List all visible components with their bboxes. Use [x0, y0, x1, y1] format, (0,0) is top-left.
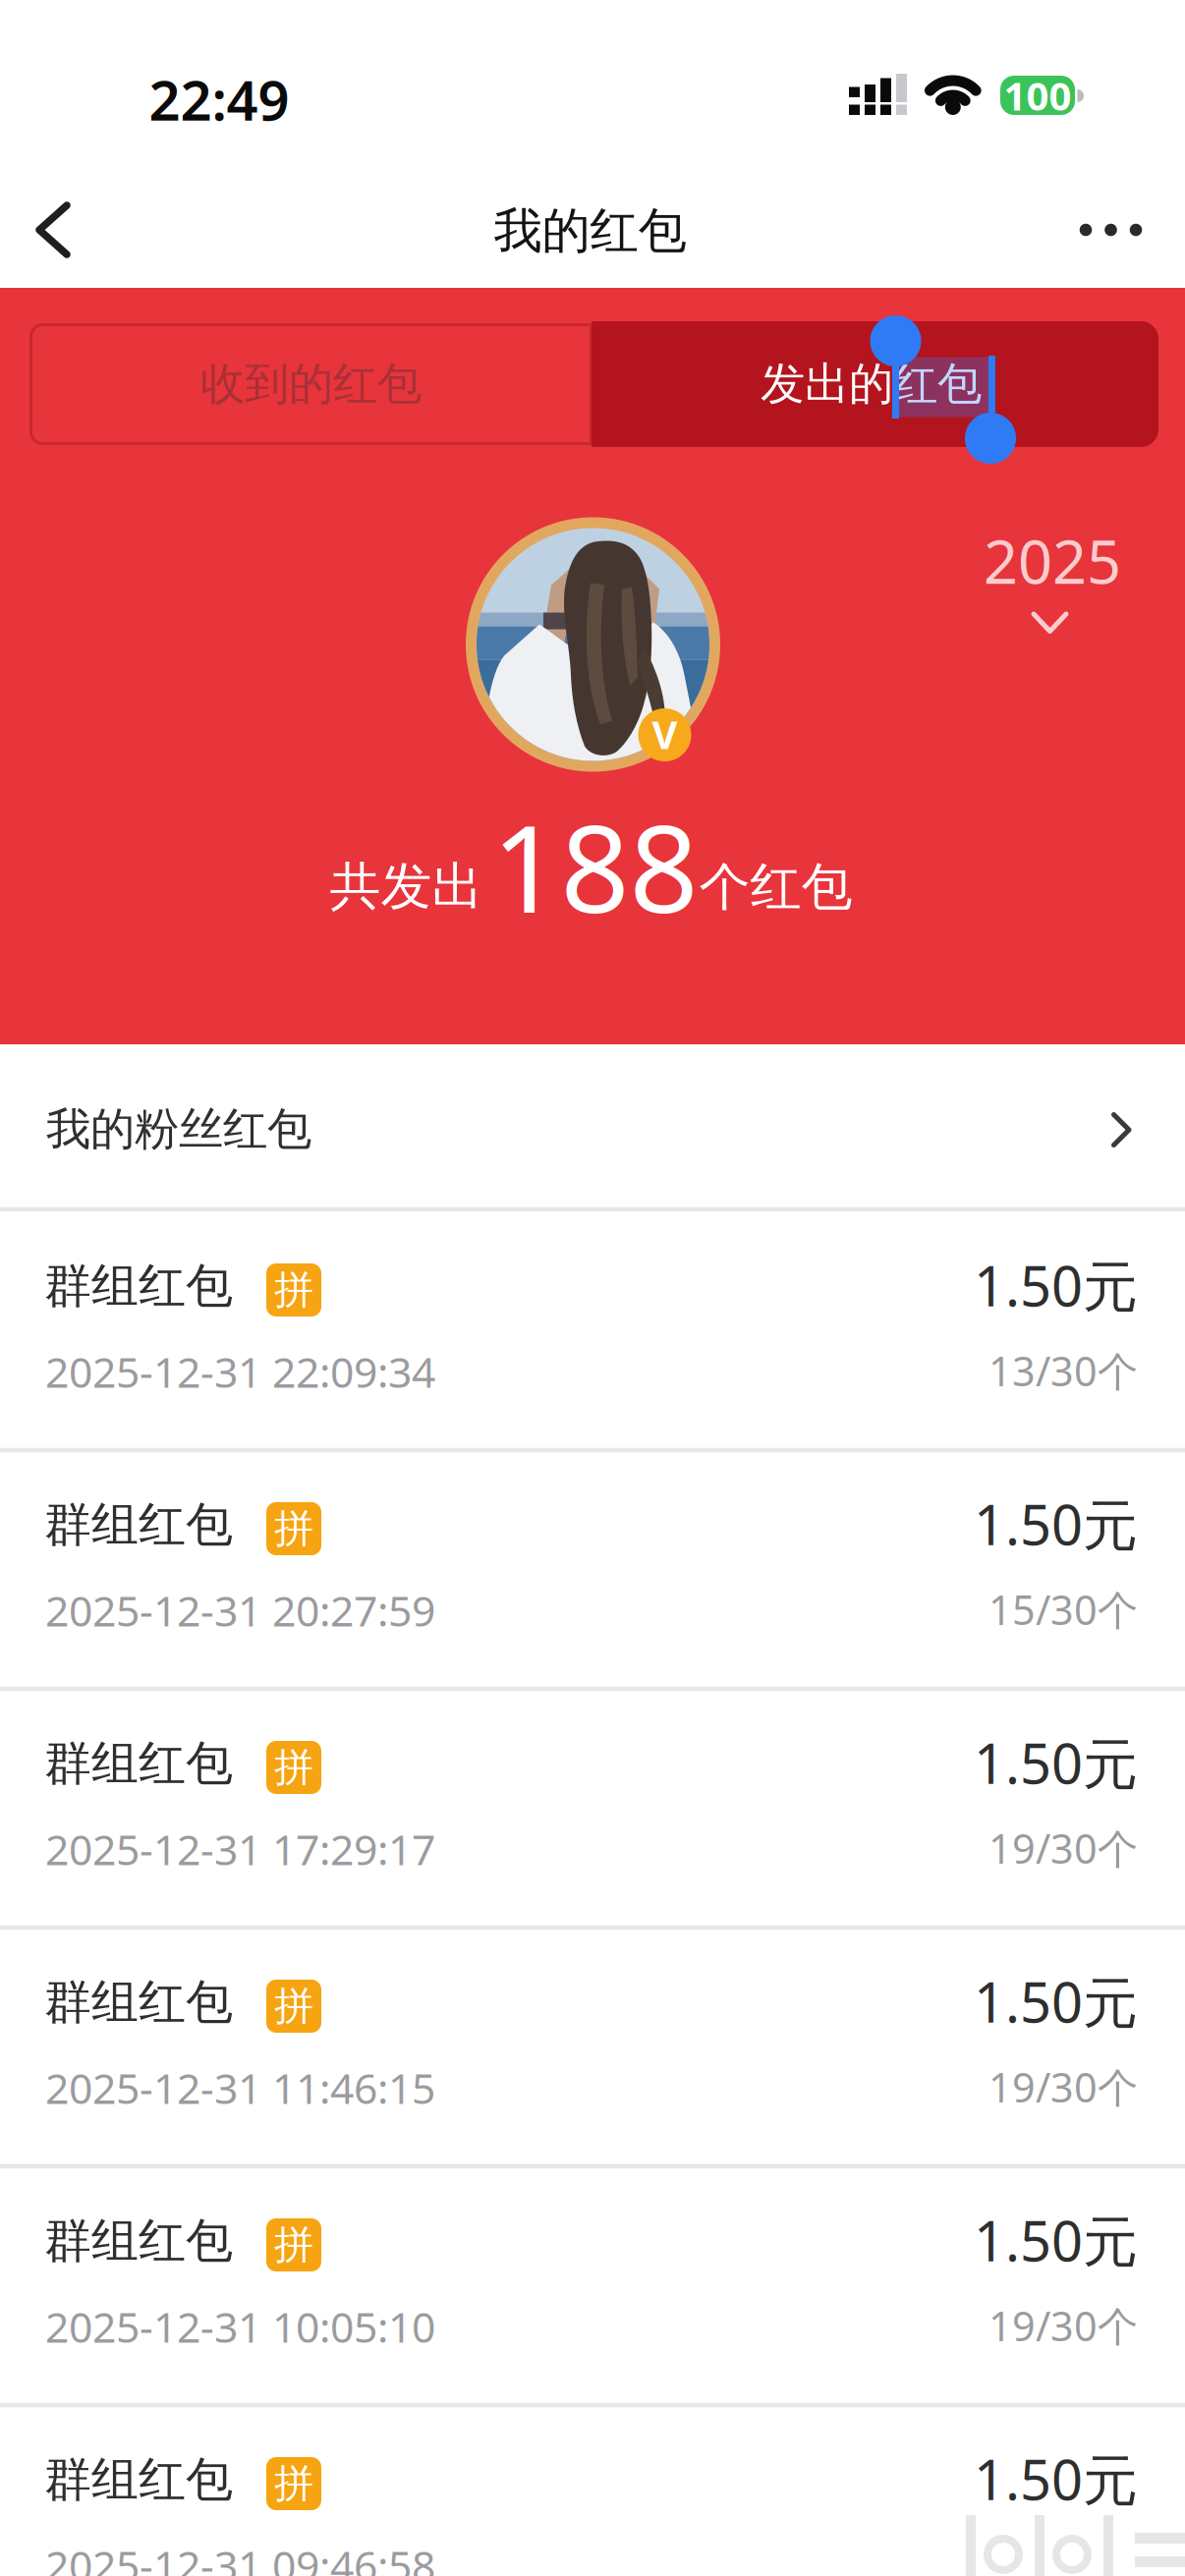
staticText: V — [652, 708, 677, 760]
staticText: 100 — [1004, 69, 1072, 121]
staticText: 我的粉丝红包 — [46, 1102, 311, 1157]
staticText: 拼 — [274, 1982, 313, 2030]
staticText: 拼 — [274, 1505, 313, 1553]
button[interactable]: 收到的红包 — [29, 323, 592, 445]
button[interactable]: 群组红包 2025-12-31 10:05:10 — [0, 2166, 1185, 2405]
staticText: 拼 — [274, 1266, 313, 1314]
button[interactable]: 群组红包 2025-12-31 09:46:58 — [0, 2405, 1185, 2576]
staticText: 1.50元 — [974, 1726, 1138, 1799]
staticText: 发出的红包 — [761, 357, 982, 412]
staticText: 收到的红包 — [200, 357, 422, 412]
staticText: 共发出 — [330, 855, 483, 918]
staticText: 群组红包 — [44, 2212, 233, 2270]
button[interactable]: 群组红包 2025-12-31 22:09:34 — [0, 1211, 1185, 1450]
staticText: 1.50元 — [974, 2203, 1138, 2277]
button[interactable]: 我的粉丝红包 — [0, 1044, 1185, 1207]
staticText: 2025 — [984, 521, 1121, 600]
button[interactable]: 群组红包 2025-12-31 11:46:15 — [0, 1928, 1185, 2166]
staticText: 群组红包 — [44, 1496, 233, 1554]
staticText: 2025-12-31 09:46:58 — [45, 2537, 435, 2576]
staticText: 19/30个 — [988, 2299, 1138, 2352]
staticText: 群组红包 — [44, 1257, 233, 1315]
staticText: 群组红包 — [44, 1735, 233, 1792]
staticText: 2025-12-31 17:29:17 — [45, 1821, 435, 1877]
staticText: 2025-12-31 11:46:15 — [45, 2060, 435, 2116]
button[interactable]: Back — [24, 197, 88, 262]
staticText: 我的红包 — [494, 201, 686, 261]
staticText: 19/30个 — [988, 1821, 1138, 1875]
staticText: 拼 — [274, 1743, 313, 1792]
staticText: 22:49 — [149, 63, 289, 136]
staticText: 群组红包 — [44, 1973, 233, 2031]
staticText: 拼 — [274, 2459, 313, 2508]
staticText: 个红包 — [699, 856, 852, 919]
staticText: 2025-12-31 22:09:34 — [45, 1344, 435, 1399]
button[interactable]: 群组红包 2025-12-31 20:27:59 — [0, 1450, 1185, 1689]
staticText: 1.50元 — [974, 1965, 1138, 2038]
staticText: 188 — [492, 786, 698, 946]
button[interactable]: Battery 100% — [1000, 76, 1075, 115]
button[interactable]: 群组红包 2025-12-31 17:29:17 — [0, 1689, 1185, 1928]
staticText: 群组红包 — [44, 2451, 233, 2509]
staticText: 2025-12-31 20:27:59 — [45, 1582, 435, 1638]
staticText: 拼 — [274, 2221, 313, 2269]
staticText: 1.50元 — [974, 2442, 1138, 2515]
staticText: 13/30个 — [988, 1344, 1138, 1398]
button[interactable]: 发出的红包 — [592, 321, 1158, 447]
button[interactable]: More — [1072, 200, 1150, 259]
staticText: 19/30个 — [988, 2060, 1138, 2114]
staticText: 1.50元 — [974, 1487, 1138, 1560]
staticText: 15/30个 — [988, 1582, 1138, 1636]
staticText: 2025-12-31 10:05:10 — [45, 2299, 435, 2354]
button[interactable]: 选择年份 2025 — [866, 521, 1121, 649]
staticText: 1.50元 — [974, 1249, 1138, 1322]
